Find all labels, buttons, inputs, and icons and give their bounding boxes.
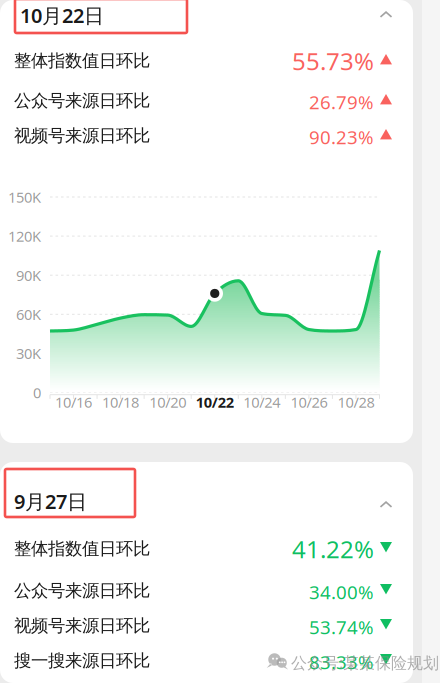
staticText: 整体指数值日环比 [14, 50, 150, 71]
button[interactable]: 10月22日 [15, 0, 187, 33]
staticText: 34.00% [309, 580, 374, 604]
staticText: 视频号来源日环比 [14, 615, 150, 636]
staticText: 30K [16, 344, 41, 363]
staticText: 83.33% [309, 650, 374, 674]
staticText: 10/22 [196, 392, 234, 412]
staticText: 10/16 [55, 392, 92, 412]
staticText: 整体指数值日环比 [14, 538, 150, 559]
staticText: 0 [33, 383, 41, 402]
staticText: 公众号:某某保险规划 [291, 652, 439, 673]
staticText: 公众号来源日环比 [14, 90, 150, 111]
staticText: 公众号来源日环比 [14, 580, 150, 601]
staticText: 视频号来源日环比 [14, 125, 150, 146]
button[interactable]: Collapse section [374, 3, 398, 27]
staticText: 搜一搜来源日环比 [14, 650, 150, 671]
staticText: 10/26 [290, 392, 327, 412]
staticText: 120K [8, 226, 41, 246]
staticText: 10/24 [243, 392, 280, 412]
staticText: 10/28 [337, 392, 374, 412]
staticText: 26.79% [309, 90, 374, 114]
staticText: 55.73% [292, 45, 374, 77]
staticText: 41.22% [292, 533, 374, 565]
button[interactable]: Collapse section [374, 493, 398, 517]
staticText: 90K [16, 265, 41, 285]
staticText: 9月27日 [14, 488, 87, 515]
staticText: 90.23% [309, 125, 374, 149]
button[interactable]: 9月27日 [5, 469, 135, 517]
staticText: 53.74% [309, 615, 374, 639]
staticText: 10/20 [149, 392, 186, 412]
staticText: 10/18 [102, 392, 139, 412]
staticText: 10月22日 [20, 2, 104, 29]
staticText: 150K [8, 187, 41, 207]
staticText: 60K [16, 305, 41, 324]
